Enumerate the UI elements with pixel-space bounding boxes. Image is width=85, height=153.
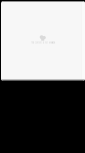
staticText: This content is not available bbox=[31, 41, 55, 44]
